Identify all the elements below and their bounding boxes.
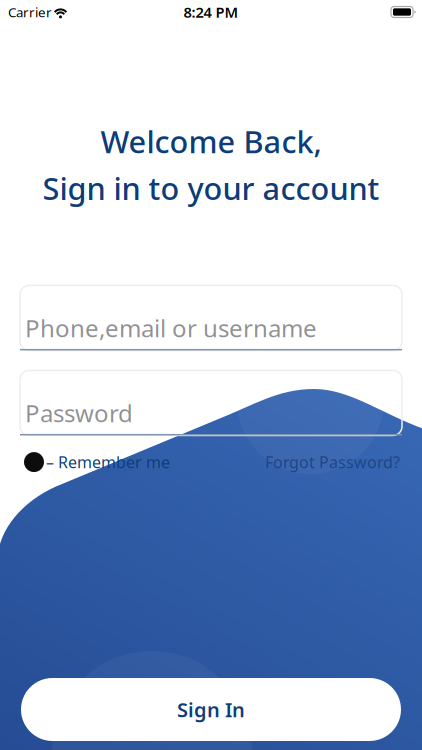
button[interactable]: Sign In [21, 678, 401, 741]
staticText: Sign in to your account [42, 168, 379, 208]
staticText: Password [25, 397, 133, 429]
staticText: Sign In [177, 696, 245, 723]
button[interactable]: Forgot Password? [265, 451, 400, 473]
staticText: Carrier [8, 3, 52, 21]
staticText: 8:24 PM [183, 2, 238, 22]
staticText: Welcome Back, [100, 121, 321, 162]
staticText: Forgot Password? [265, 451, 400, 473]
button[interactable]: – Remember me [24, 451, 170, 473]
staticText: – Remember me [46, 451, 170, 473]
staticText: Phone,email or username [25, 312, 317, 344]
